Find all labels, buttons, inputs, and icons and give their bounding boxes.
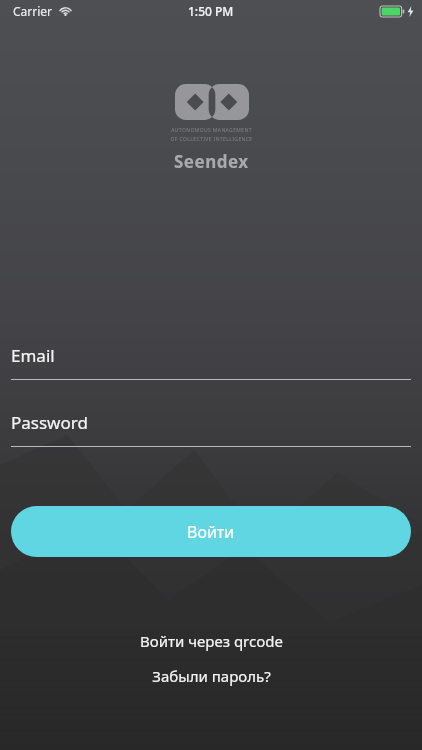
staticText: AUTONOMOUS MANAGEMENT	[171, 127, 252, 134]
button[interactable]: Password	[0, 407, 422, 438]
button[interactable]: Войти	[11, 506, 411, 557]
staticText: OF COLLECTIVE INTELLIGENCE	[170, 136, 253, 143]
staticText: Carrier	[13, 3, 53, 19]
button[interactable]: Email	[0, 340, 422, 371]
staticText: Email	[11, 344, 55, 367]
staticText: Забыли пароль?	[152, 666, 271, 686]
button[interactable]: Войти через qrcode	[130, 628, 293, 654]
button[interactable]: Забыли пароль?	[142, 663, 281, 689]
staticText: 1:50 PM	[188, 3, 234, 19]
staticText: Войти через qrcode	[140, 631, 283, 651]
staticText: Войти	[187, 521, 235, 543]
staticText: Password	[11, 411, 88, 434]
staticText: Seendex	[174, 150, 249, 173]
